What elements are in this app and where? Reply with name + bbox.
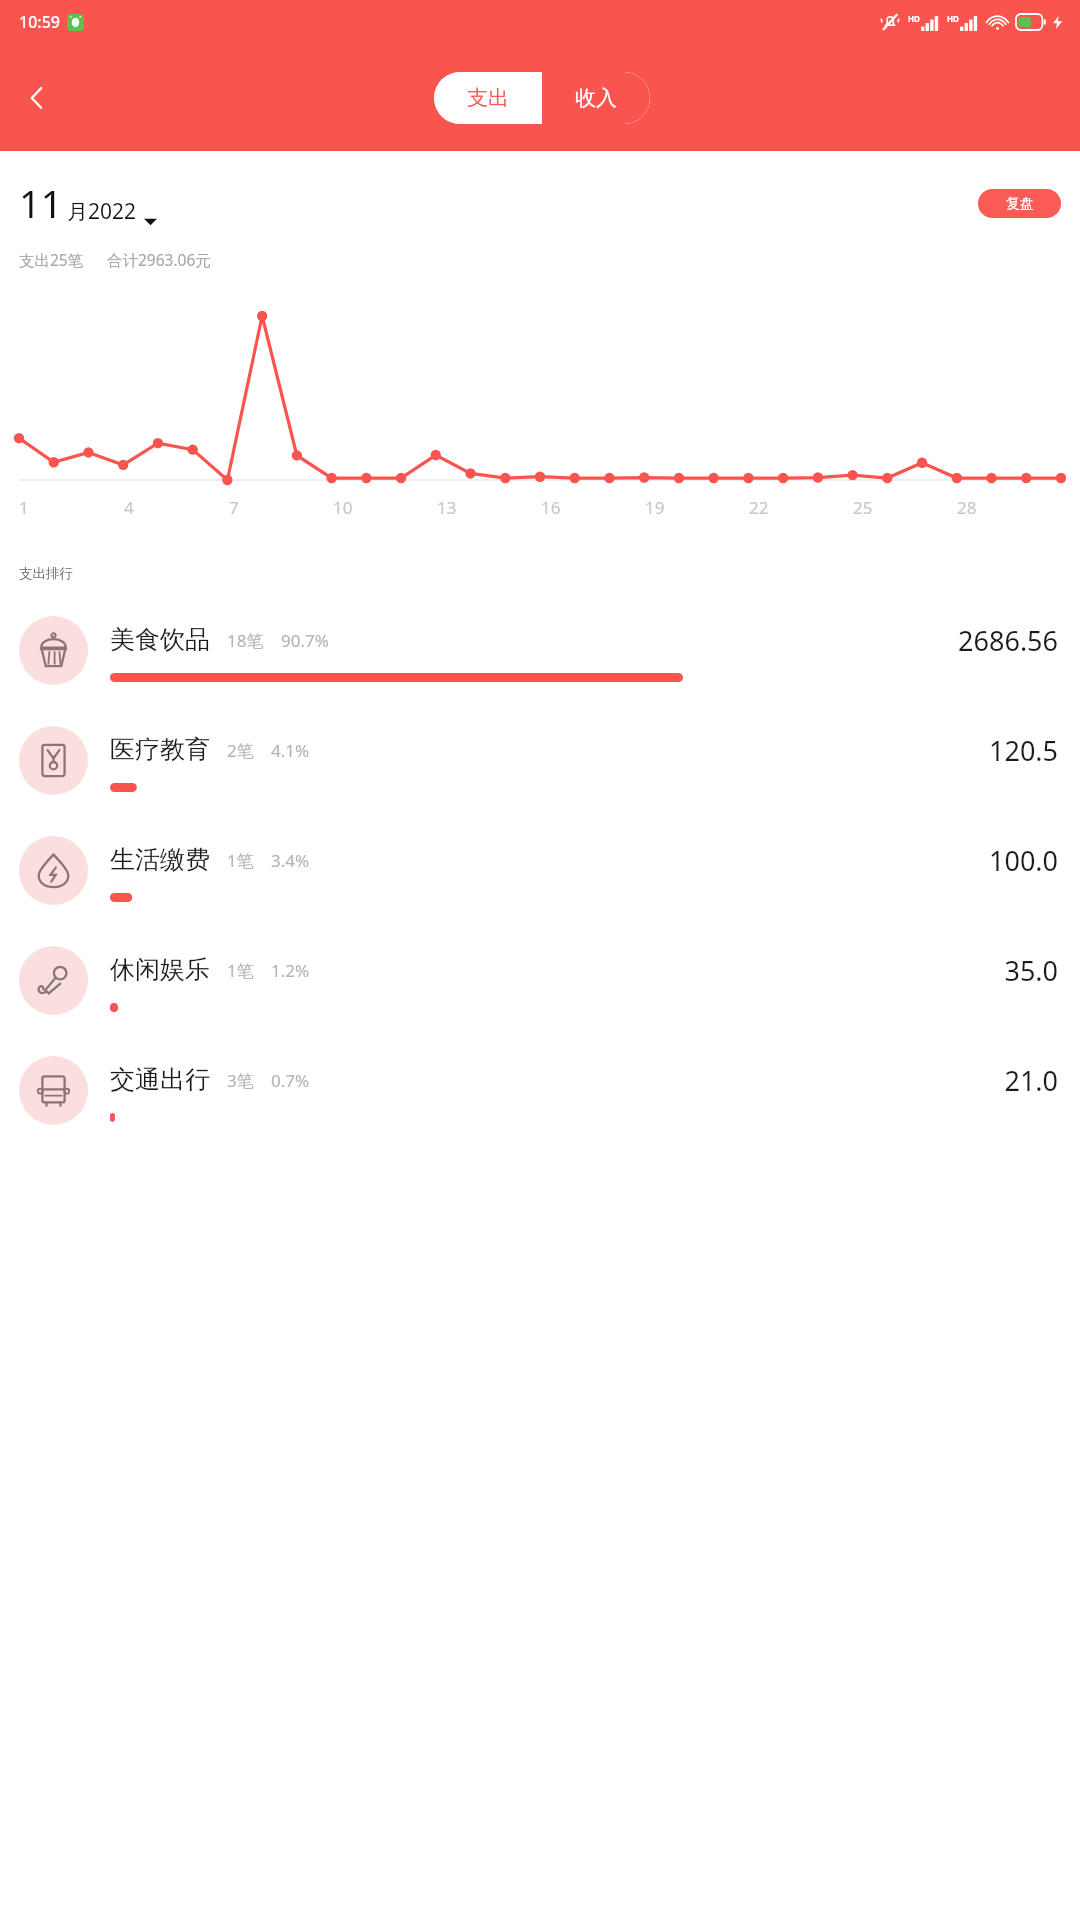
staticText: 120.5	[988, 732, 1058, 769]
staticText: 28	[957, 496, 977, 519]
staticText: 3.4%	[271, 849, 310, 872]
button[interactable]: 支出	[434, 72, 542, 124]
staticText: 25	[853, 496, 873, 519]
staticText: 19	[645, 496, 665, 519]
staticText: 医疗教育	[110, 734, 210, 765]
staticText: 交通出行	[110, 1064, 210, 1095]
button[interactable]: 医疗教育	[0, 710, 1080, 820]
staticText: 100.0	[988, 842, 1058, 879]
button[interactable]: Back	[10, 71, 64, 125]
staticText: HD	[947, 13, 959, 24]
staticText: 收入	[575, 85, 617, 111]
staticText: 休闲娱乐	[110, 954, 210, 985]
staticText: 合计2963.06元	[107, 249, 211, 270]
button[interactable]: 美食饮品	[0, 600, 1080, 710]
staticText: 11	[19, 177, 63, 229]
staticText: 10	[333, 496, 353, 519]
staticText: 13	[437, 496, 457, 519]
button[interactable]: 生活缴费	[0, 820, 1080, 930]
staticText: 支出排行	[19, 565, 73, 582]
button[interactable]: 收入	[542, 72, 650, 124]
staticText: 支出	[467, 85, 509, 111]
staticText: 4	[124, 496, 134, 519]
staticText: 4.1%	[271, 739, 310, 762]
staticText: 7	[229, 496, 239, 519]
staticText: 2笔	[227, 739, 254, 762]
staticText: 21.0	[1004, 1062, 1058, 1099]
staticText: 16	[541, 496, 561, 519]
staticText: 生活缴费	[110, 844, 210, 875]
staticText: 10:59	[19, 11, 60, 33]
staticText: 美食饮品	[110, 624, 210, 655]
staticText: 0.7%	[271, 1069, 310, 1092]
staticText: 月2022	[67, 197, 137, 226]
staticText: 复盘	[1006, 195, 1034, 213]
staticText: 1	[19, 496, 29, 519]
button[interactable]: 复盘	[978, 189, 1061, 218]
staticText: HD	[908, 13, 920, 24]
staticText: 1笔	[227, 959, 254, 982]
staticText: 支出25笔	[19, 249, 84, 270]
staticText: 35.0	[1004, 952, 1058, 989]
staticText: 1.2%	[271, 959, 310, 982]
staticText: 18笔	[227, 629, 264, 652]
staticText: 1笔	[227, 849, 254, 872]
staticText: 22	[749, 496, 769, 519]
staticText: 90.7%	[281, 629, 329, 652]
staticText: 3笔	[227, 1069, 254, 1092]
button[interactable]: 11	[19, 177, 157, 229]
button[interactable]: 交通出行	[0, 1040, 1080, 1150]
button[interactable]: 休闲娱乐	[0, 930, 1080, 1040]
staticText: 2686.56	[958, 622, 1058, 659]
